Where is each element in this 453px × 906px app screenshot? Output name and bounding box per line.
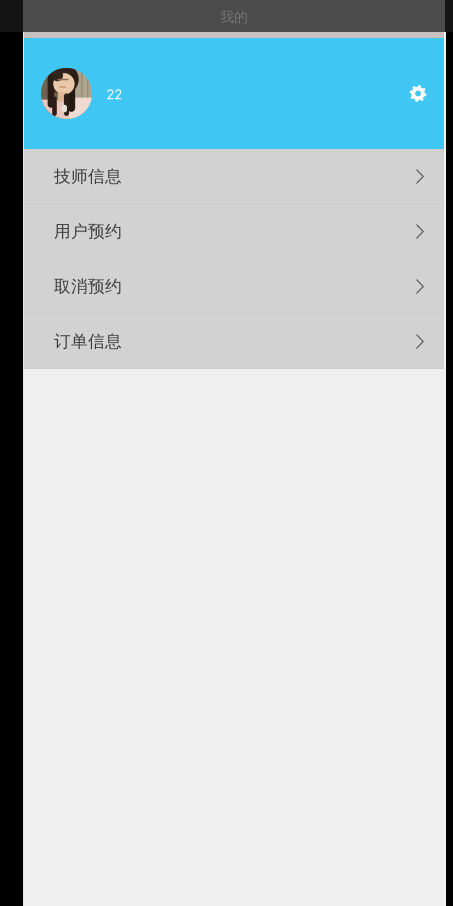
button[interactable]: 订单信息 [24,314,444,369]
button[interactable]: 技师信息 [24,149,444,204]
staticText: 用户预约 [54,221,122,242]
staticText: 我的 [220,8,248,26]
staticText: 技师信息 [54,166,122,187]
button[interactable]: Settings [396,71,440,115]
staticText: 订单信息 [54,331,122,352]
button[interactable]: 取消预约 [24,259,444,314]
button[interactable]: 用户预约 [24,204,444,259]
staticText: 22 [106,86,122,102]
staticText: 取消预约 [54,276,122,297]
